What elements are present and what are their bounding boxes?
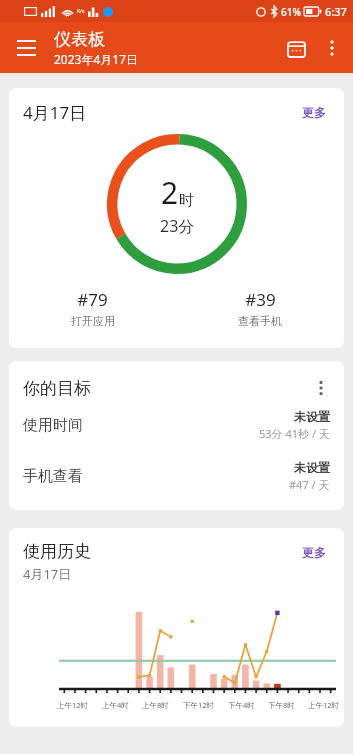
- staticText: 上午12时: [308, 700, 340, 710]
- staticText: 使用历史: [23, 541, 91, 562]
- staticText: 53分 41秒 / 天: [259, 426, 330, 441]
- staticText: 仪表板: [54, 29, 105, 50]
- staticText: #39: [245, 288, 276, 311]
- button[interactable]: 更多: [298, 541, 330, 564]
- staticText: 4月17日: [23, 565, 72, 583]
- staticText: 手机查看: [23, 467, 83, 486]
- staticText: 时: [179, 191, 194, 210]
- button[interactable]: #79: [9, 286, 176, 330]
- staticText: 23分: [160, 215, 195, 237]
- staticText: 2: [161, 172, 179, 213]
- staticText: 上午4时: [102, 700, 129, 710]
- staticText: 未设置: [294, 409, 330, 424]
- button[interactable]: Pick date: [277, 29, 315, 67]
- staticText: 下午4时: [228, 700, 255, 710]
- staticText: 上午8时: [142, 700, 169, 710]
- button[interactable]: #39: [176, 286, 344, 330]
- staticText: 上午12时: [57, 700, 89, 710]
- button[interactable]: 使用时间: [9, 403, 344, 441]
- staticText: K/s: [77, 8, 85, 15]
- staticText: 未设置: [294, 460, 330, 475]
- staticText: 下午8时: [268, 700, 295, 710]
- staticText: 使用时间: [23, 416, 83, 435]
- staticText: 更多: [302, 105, 326, 120]
- staticText: 查看手机: [238, 314, 282, 328]
- button[interactable]: Open navigation menu: [8, 30, 44, 66]
- staticText: 你的目标: [23, 378, 91, 399]
- staticText: 6:37: [325, 4, 347, 19]
- staticText: 下午12时: [183, 700, 215, 710]
- staticText: 61%: [281, 5, 301, 19]
- staticText: #47 / 天: [289, 477, 330, 492]
- staticText: 更多: [302, 545, 326, 560]
- button[interactable]: 更多: [298, 101, 330, 124]
- staticText: #79: [77, 288, 108, 311]
- staticText: 4月17日: [23, 101, 87, 124]
- button[interactable]: Goal options: [306, 373, 336, 403]
- button[interactable]: 手机查看: [9, 454, 344, 492]
- staticText: 2023年4月17日: [54, 51, 139, 67]
- button[interactable]: More options: [315, 31, 349, 65]
- staticText: 打开应用: [71, 314, 115, 328]
